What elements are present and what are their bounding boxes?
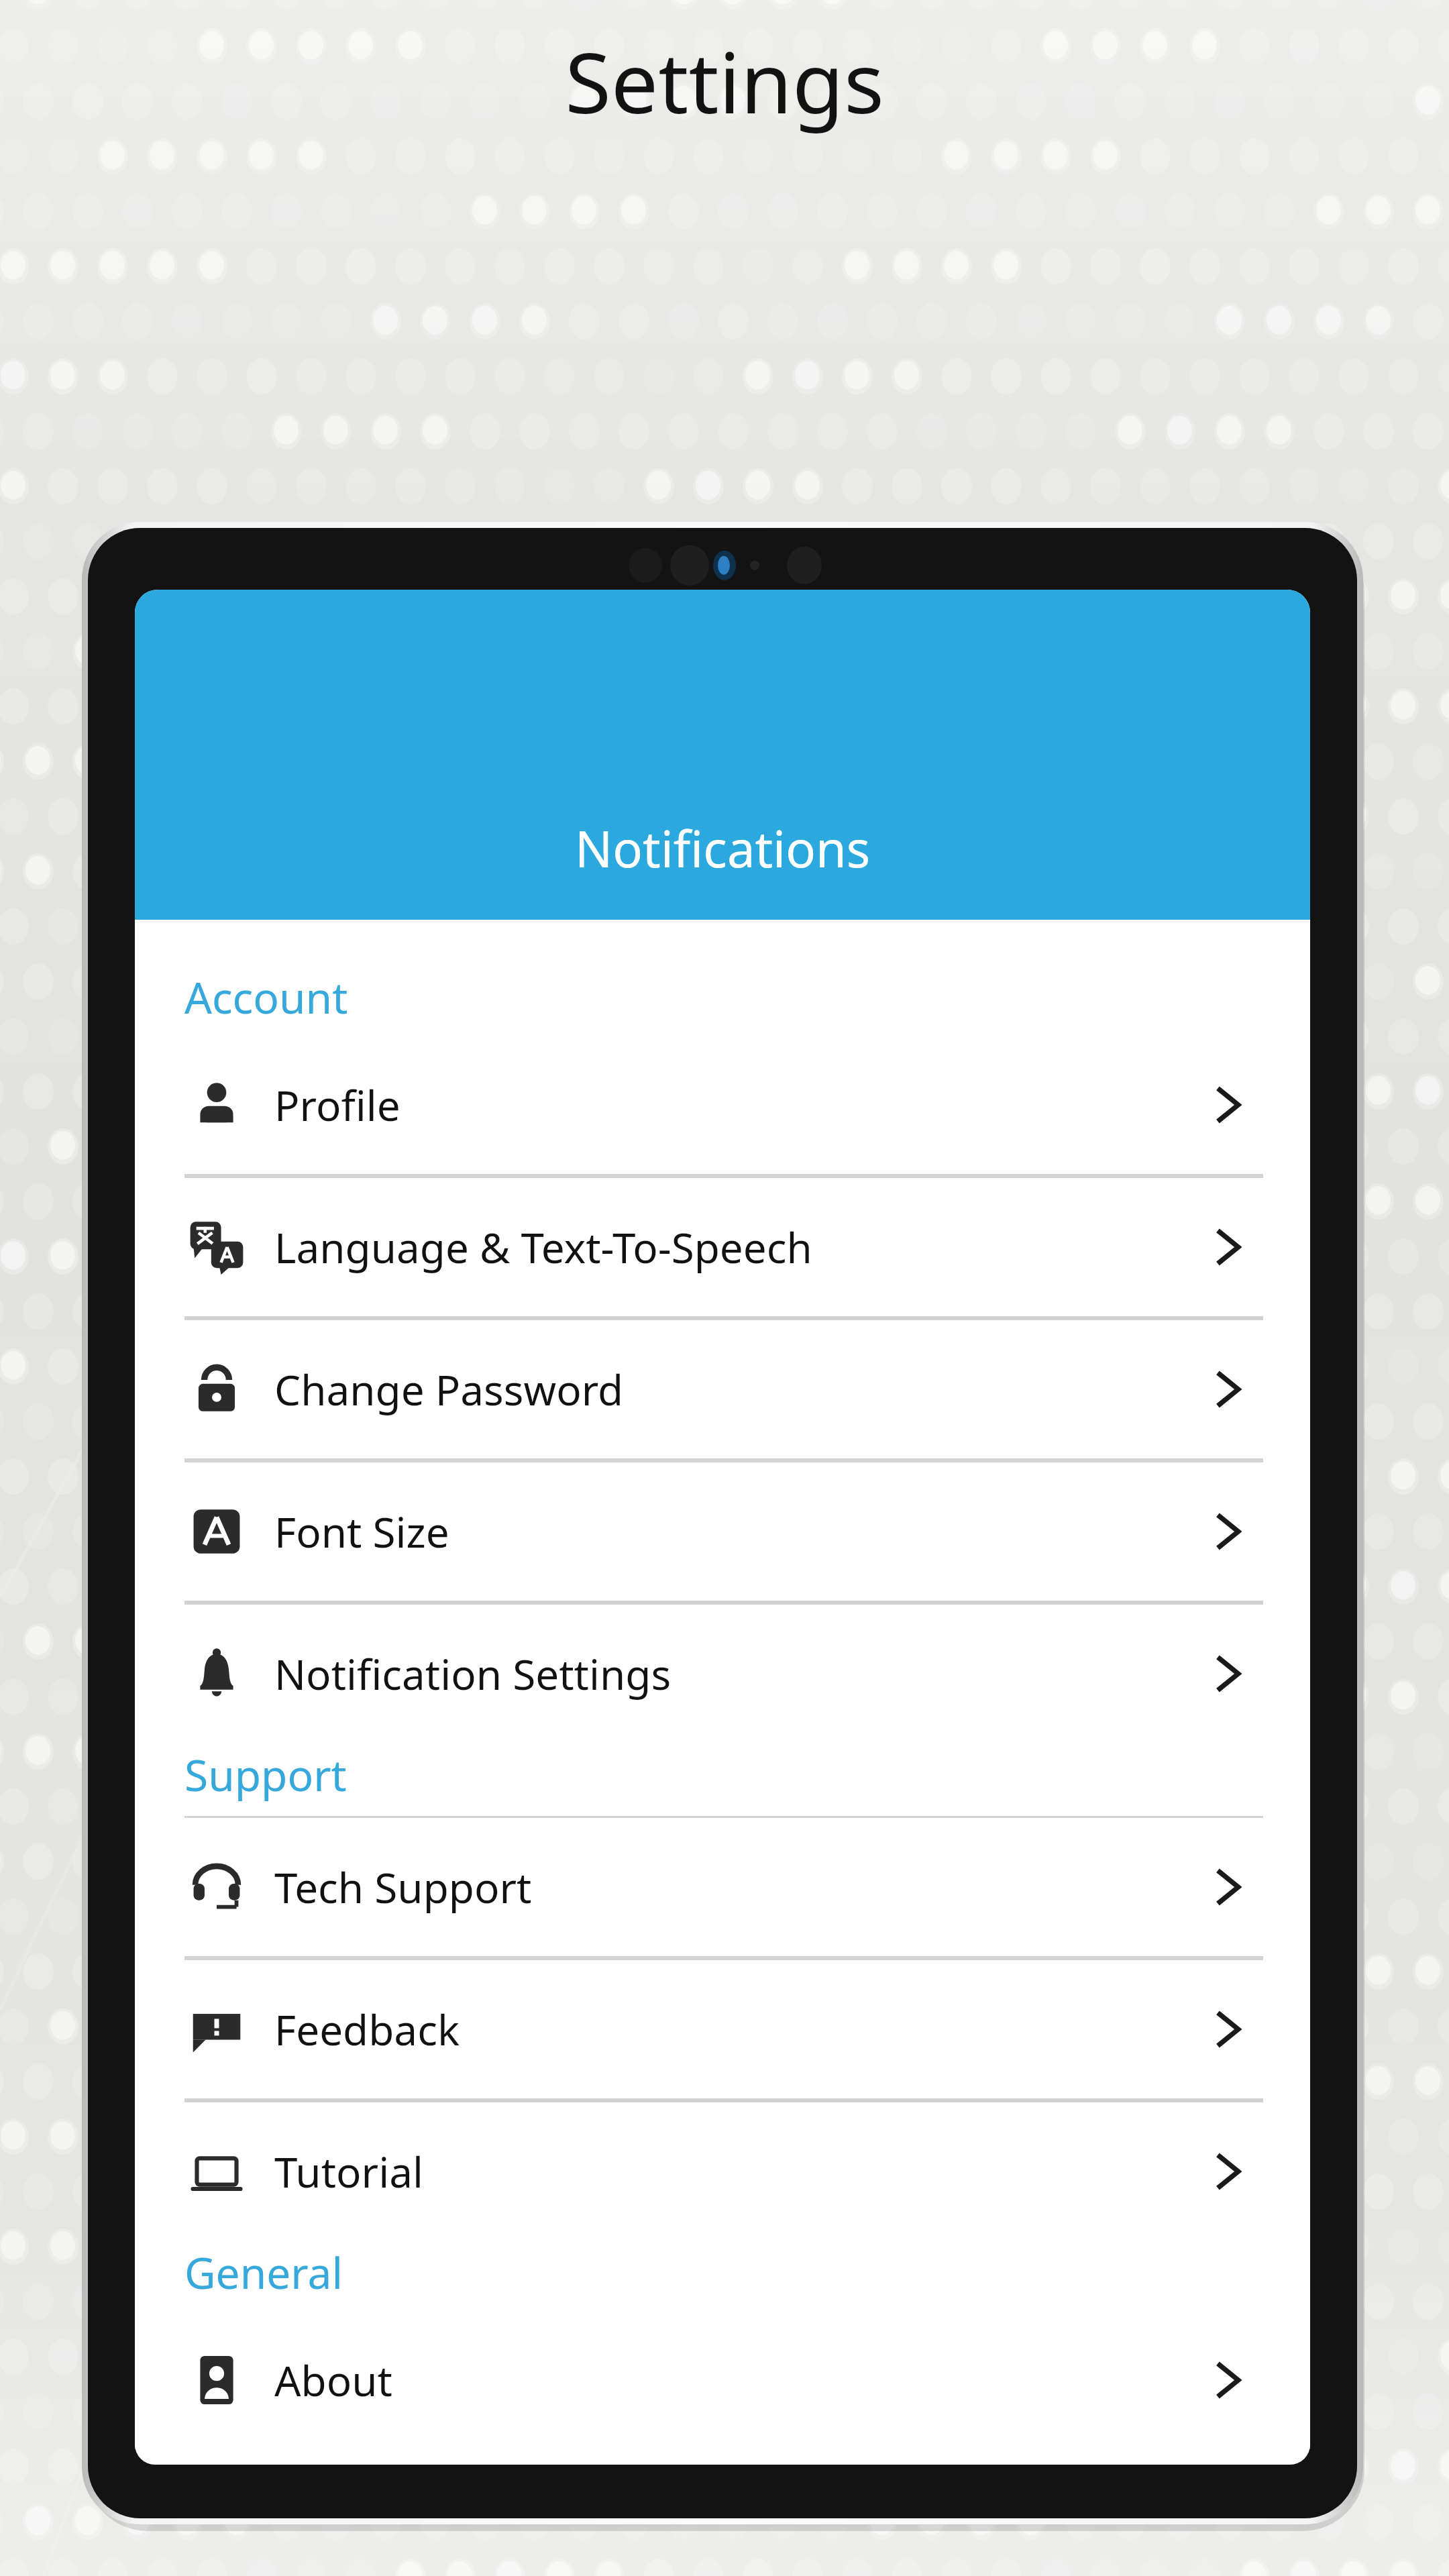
other: Open Language & Text-To-Speech: [1200, 1218, 1258, 1276]
staticText: Tutorial: [274, 2143, 1200, 2200]
staticText: Font Size: [274, 1503, 1200, 1560]
button[interactable]: Language & Text-To-Speech: [135, 1178, 1310, 1316]
other: Open Feedback: [1200, 2000, 1258, 2058]
other: Open Tutorial: [1200, 2143, 1258, 2200]
button[interactable]: Font Size: [135, 1462, 1310, 1601]
other: Open Change Password: [1200, 1360, 1258, 1418]
button[interactable]: About: [135, 2311, 1310, 2449]
other: Open About: [1200, 2351, 1258, 2409]
other: Open Notification Settings: [1200, 1645, 1258, 1703]
staticText: Feedback: [274, 2001, 1200, 2057]
staticText: Tech Support: [274, 1859, 1200, 1915]
other: Open Profile: [1200, 1076, 1258, 1134]
staticText: Change Password: [274, 1361, 1200, 1417]
staticText: Settings: [565, 23, 884, 138]
button[interactable]: Feedback: [135, 1960, 1310, 2098]
button[interactable]: Profile: [135, 1036, 1310, 1174]
staticText: Language & Text-To-Speech: [274, 1219, 1200, 1275]
staticText: Support: [184, 1746, 1310, 1804]
staticText: Notifications: [575, 814, 871, 882]
other: Open Tech Support: [1200, 1858, 1258, 1916]
button[interactable]: Change Password: [135, 1320, 1310, 1458]
button[interactable]: Tech Support: [135, 1818, 1310, 1956]
button[interactable]: Notification Settings: [135, 1605, 1310, 1743]
other: Open Font Size: [1200, 1503, 1258, 1560]
staticText: About: [274, 2352, 1200, 2408]
button[interactable]: Tutorial: [135, 2102, 1310, 2241]
staticText: Notification Settings: [274, 1646, 1200, 1702]
staticText: General: [184, 2243, 1310, 2302]
staticText: Account: [184, 968, 1310, 1026]
staticText: Profile: [274, 1077, 1200, 1133]
